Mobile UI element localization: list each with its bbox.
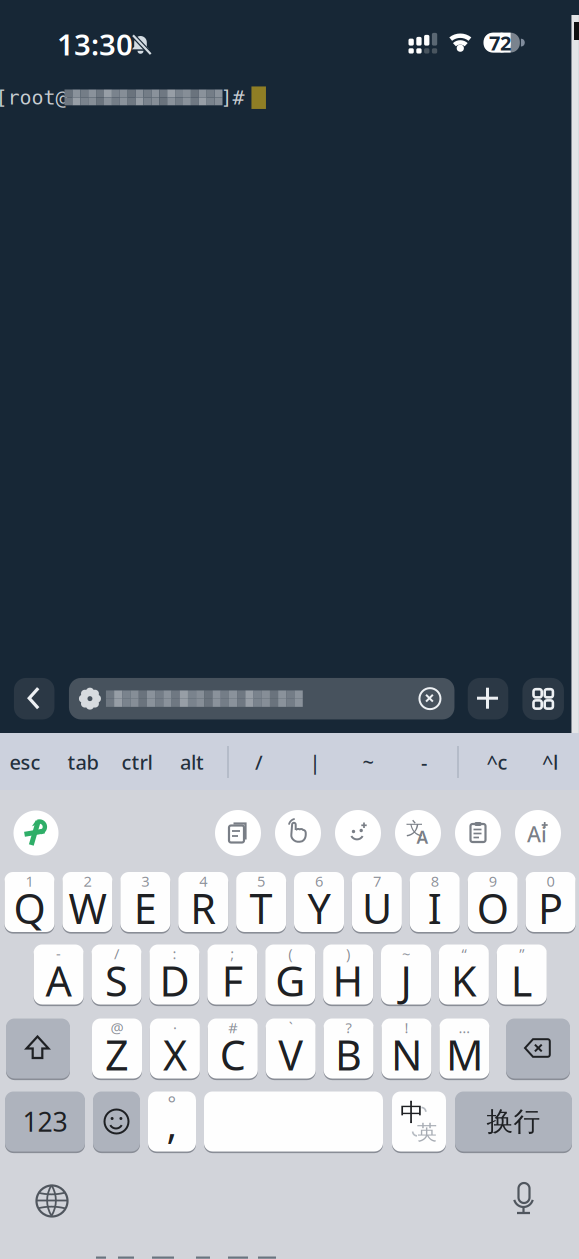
button[interactable]: ; <box>207 944 257 1004</box>
button[interactable]: ^c <box>475 740 519 784</box>
button[interactable]: ( <box>265 944 315 1004</box>
button[interactable]: ctrl <box>115 740 159 784</box>
staticText: 英 <box>417 1120 437 1145</box>
staticText: K <box>451 953 477 1008</box>
button[interactable] <box>30 1179 74 1223</box>
button[interactable]: / <box>91 944 141 1004</box>
button[interactable]: 5 <box>236 872 286 932</box>
button[interactable]: 9 <box>468 872 518 932</box>
button[interactable] <box>455 810 501 856</box>
staticText: X <box>163 1027 187 1082</box>
button[interactable]: 换行 <box>455 1091 572 1151</box>
button[interactable]: 8 <box>410 872 460 932</box>
staticText: P <box>538 881 563 935</box>
staticText: H <box>333 953 364 1008</box>
staticText: ^c <box>486 749 507 775</box>
button[interactable]: ) <box>323 944 373 1004</box>
staticText: 8 <box>431 871 439 891</box>
staticText: Y <box>307 881 330 935</box>
button[interactable]: ~ <box>381 944 431 1004</box>
button[interactable]: “ <box>439 944 489 1004</box>
button[interactable]: 4 <box>178 872 228 932</box>
staticText: 0 <box>547 871 555 891</box>
button[interactable]: 中 <box>392 1091 446 1151</box>
button[interactable] <box>335 810 381 856</box>
staticText: - <box>421 749 427 775</box>
staticText: W <box>68 881 106 935</box>
staticText: Q <box>13 881 45 935</box>
button[interactable]: : <box>149 944 199 1004</box>
staticText: 4 <box>199 871 207 891</box>
staticText: 5 <box>257 871 265 891</box>
staticText: alt <box>180 749 204 775</box>
button[interactable]: ~ <box>346 740 390 784</box>
staticText: O <box>477 881 509 935</box>
staticText: , <box>166 1097 177 1150</box>
button[interactable]: 1 <box>4 872 54 932</box>
button[interactable]: alt <box>170 740 214 784</box>
button[interactable]: 6 <box>294 872 344 932</box>
staticText: [root@ <box>0 86 67 109</box>
button[interactable]: 3 <box>120 872 170 932</box>
staticText: T <box>250 881 273 935</box>
button[interactable] <box>14 678 54 719</box>
button[interactable]: · <box>150 1018 200 1078</box>
staticText: 3 <box>141 871 149 891</box>
staticText: ! <box>404 1018 408 1037</box>
button[interactable]: ° <box>148 1091 196 1151</box>
button[interactable] <box>468 678 508 719</box>
button[interactable]: # <box>208 1018 258 1078</box>
button[interactable]: … <box>439 1018 489 1078</box>
staticText: N <box>391 1027 422 1082</box>
staticText: 9 <box>489 871 497 891</box>
button[interactable]: | <box>293 740 337 784</box>
button[interactable] <box>275 810 321 856</box>
staticText: ]# <box>220 86 244 109</box>
button[interactable]: 123 <box>5 1091 85 1151</box>
button[interactable]: 文 <box>395 810 441 856</box>
button[interactable]: ” <box>497 944 547 1004</box>
staticText: ~ <box>362 749 373 775</box>
button[interactable] <box>204 1091 383 1151</box>
staticText: … <box>458 1018 470 1037</box>
button[interactable]: ^l <box>528 740 572 784</box>
button[interactable] <box>69 678 454 719</box>
staticText: 13:30 <box>57 24 133 63</box>
button[interactable]: 7 <box>352 872 402 932</box>
button[interactable]: Ai <box>515 810 561 856</box>
staticText: V <box>278 1027 303 1082</box>
staticText: 中 <box>400 1098 424 1127</box>
staticText: S <box>105 953 128 1008</box>
button[interactable]: tab <box>61 740 105 784</box>
button[interactable] <box>215 810 261 856</box>
button[interactable]: ` <box>266 1018 316 1078</box>
button[interactable]: - <box>34 944 84 1004</box>
staticText: : <box>172 944 176 963</box>
button[interactable] <box>93 1091 140 1151</box>
button[interactable]: - <box>402 740 446 784</box>
button[interactable]: @ <box>92 1018 142 1078</box>
button[interactable] <box>13 810 58 855</box>
staticText: 6 <box>315 871 323 891</box>
button[interactable] <box>506 1018 570 1078</box>
staticText: 72 <box>489 29 511 56</box>
staticText: ctrl <box>121 749 152 775</box>
button[interactable]: 2 <box>62 872 112 932</box>
staticText: A <box>416 825 428 848</box>
button[interactable]: / <box>237 740 281 784</box>
staticText: F <box>222 953 243 1008</box>
button[interactable] <box>522 678 564 720</box>
staticText: 1 <box>25 871 33 891</box>
button[interactable] <box>502 1178 546 1222</box>
button[interactable]: ? <box>324 1018 374 1078</box>
button[interactable]: ! <box>381 1018 431 1078</box>
staticText: · <box>173 1018 177 1037</box>
button[interactable]: 0 <box>526 872 576 932</box>
button[interactable] <box>6 1018 70 1078</box>
staticText: 换行 <box>486 1105 540 1138</box>
staticText: esc <box>9 749 40 775</box>
staticText: ? <box>346 1018 352 1037</box>
staticText: ° <box>167 1090 176 1117</box>
button[interactable]: esc <box>3 740 47 784</box>
staticText: 123 <box>22 1104 67 1139</box>
